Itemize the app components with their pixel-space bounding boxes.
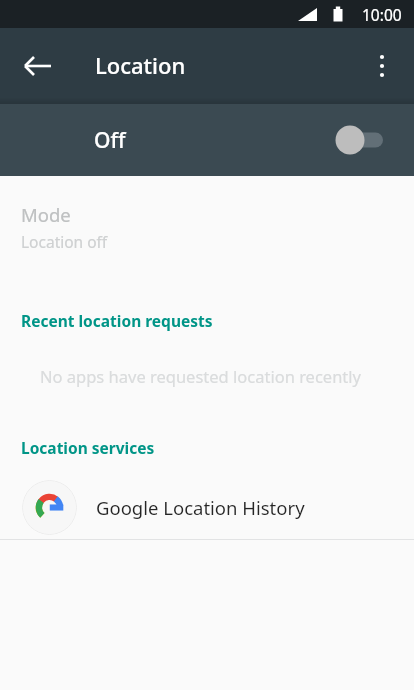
button[interactable]: Mode: [0, 202, 414, 256]
button[interactable]: Off: [0, 104, 414, 176]
button[interactable]: More options: [358, 42, 406, 90]
staticText: Mode: [21, 202, 71, 227]
staticText: Google Location History: [96, 495, 305, 520]
staticText: 10:00: [362, 4, 402, 25]
staticText: No apps have requested location recently: [40, 365, 361, 387]
staticText: Recent location requests: [21, 310, 213, 331]
staticText: Location off: [21, 231, 108, 252]
button[interactable]: Back: [10, 38, 66, 94]
staticText: Off: [94, 126, 126, 155]
other: Location toggle, off: [335, 124, 383, 156]
button[interactable]: Google Location History: [0, 475, 414, 539]
staticText: Location: [95, 50, 186, 80]
staticText: Location services: [21, 437, 155, 458]
